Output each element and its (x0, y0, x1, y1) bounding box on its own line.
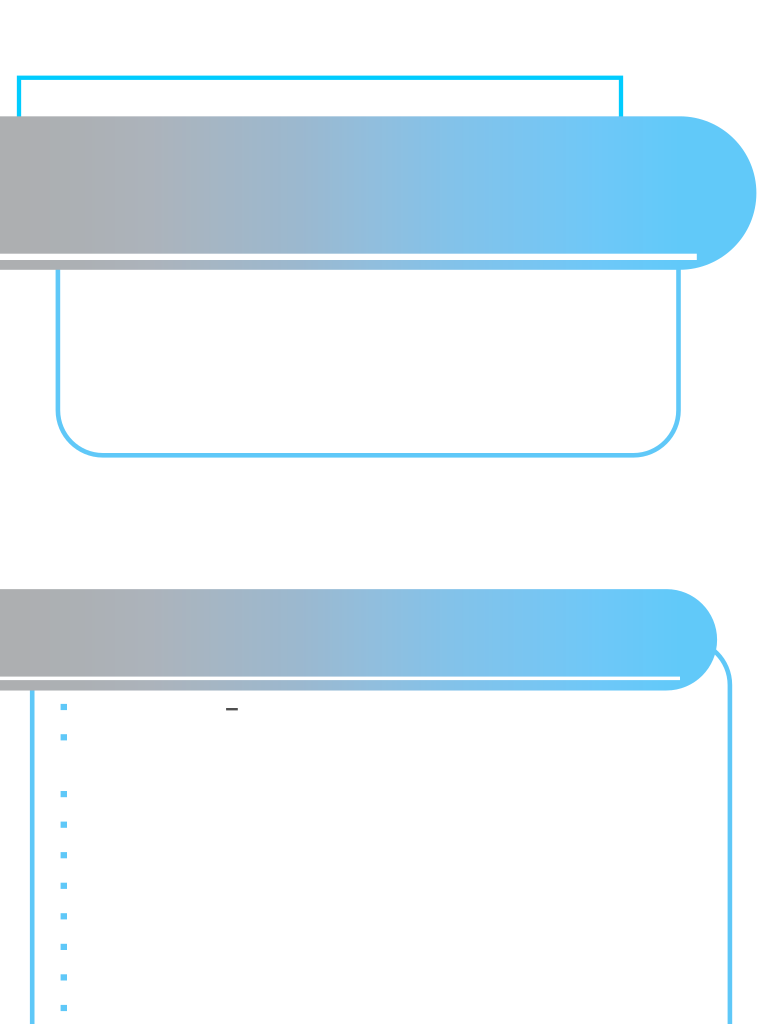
button[interactable]: Row (36, 934, 726, 960)
button[interactable]: Card one header (0, 116, 756, 270)
button[interactable]: Row (36, 694, 726, 720)
button[interactable]: Row (36, 873, 726, 899)
button[interactable]: Row (36, 812, 726, 838)
button[interactable]: Row (36, 842, 726, 868)
button[interactable]: Row (36, 964, 726, 990)
button[interactable]: Card two header (0, 589, 717, 690)
button[interactable]: Row (36, 724, 726, 750)
button[interactable]: Row (36, 781, 726, 807)
button[interactable]: Row (36, 995, 726, 1021)
button[interactable]: Row (36, 903, 726, 929)
